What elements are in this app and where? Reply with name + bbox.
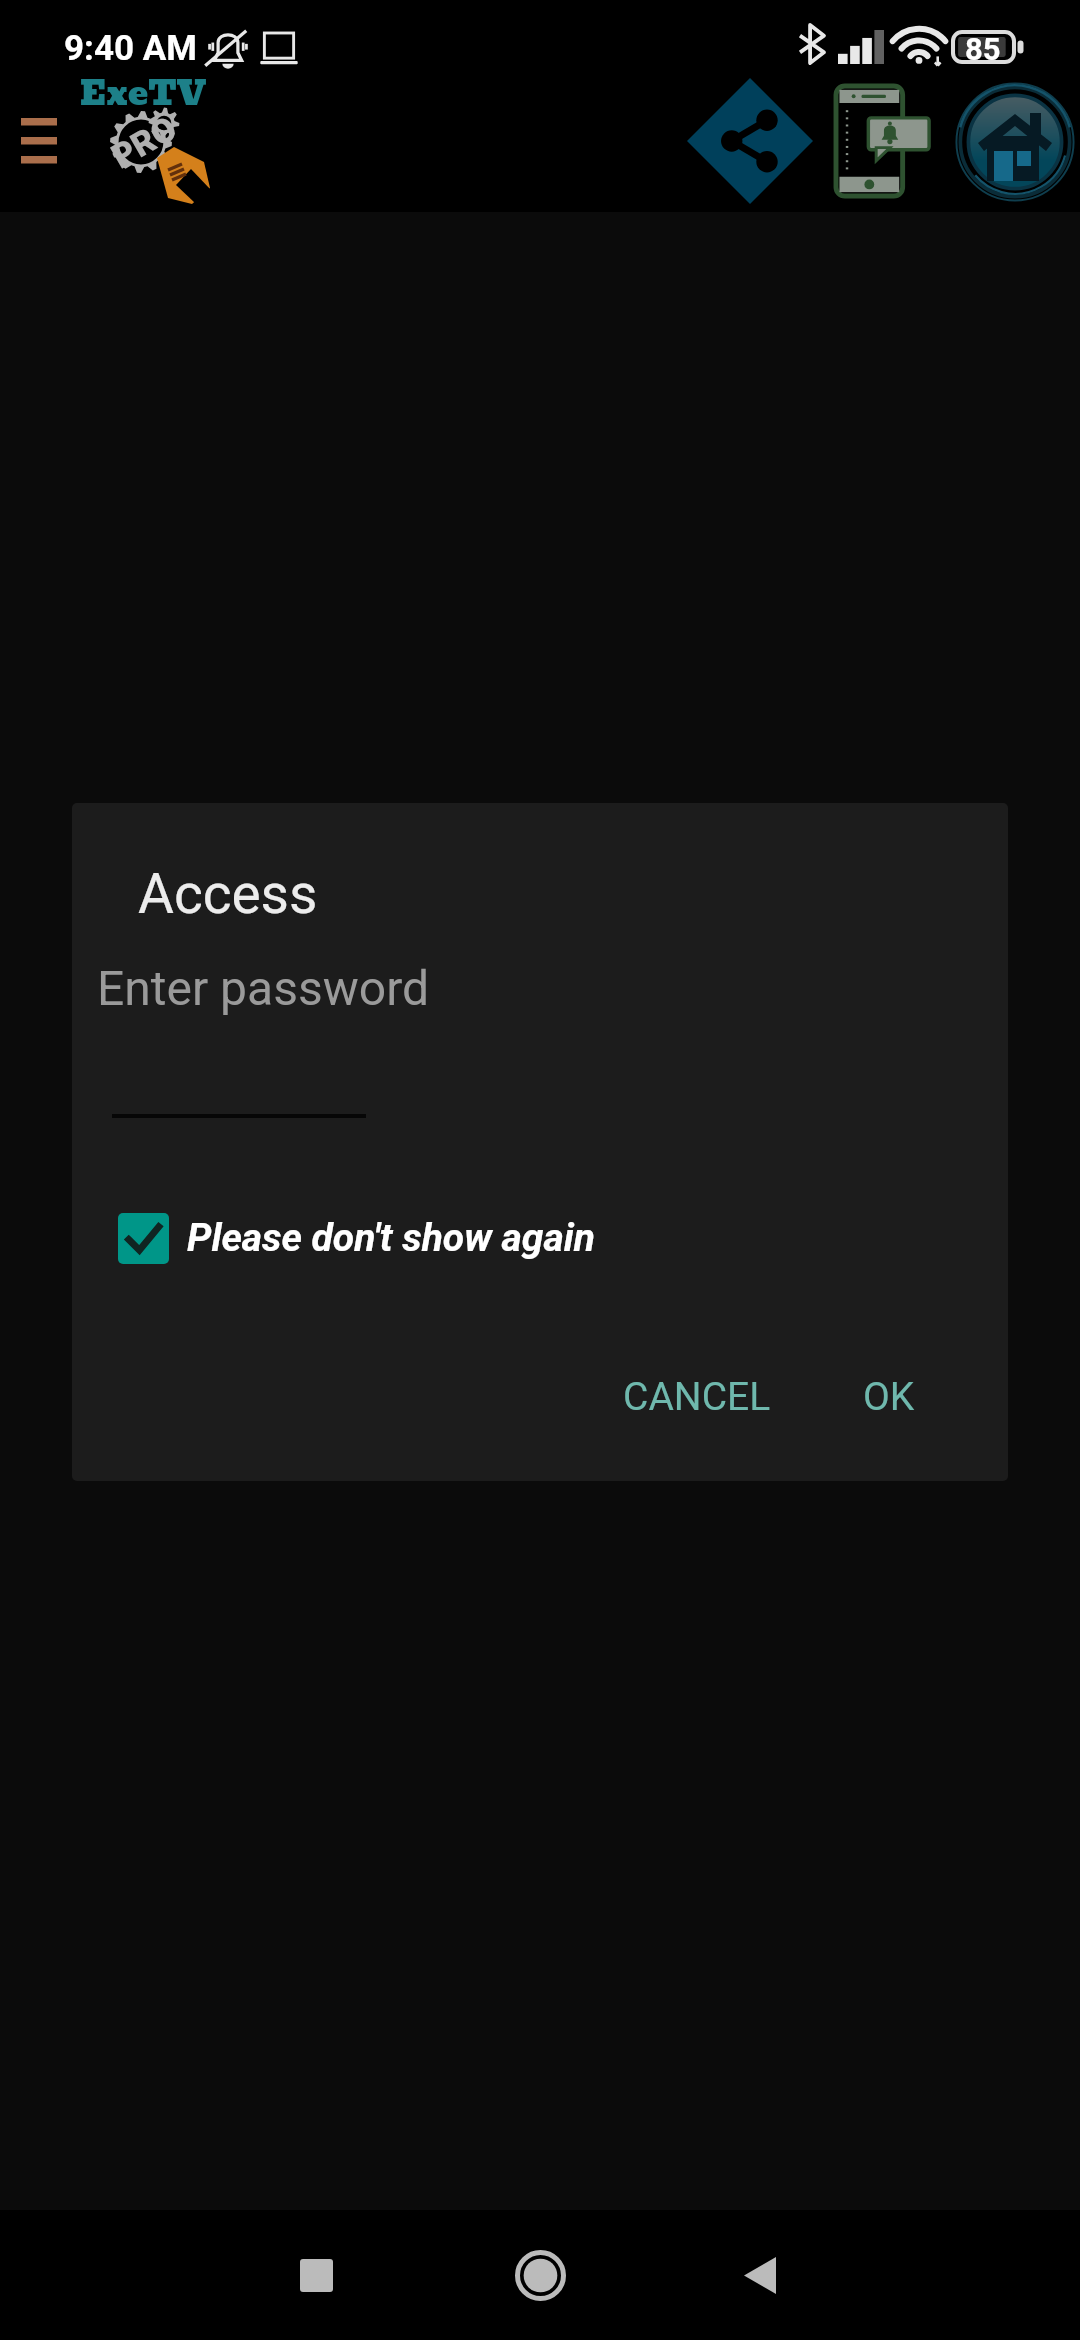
button[interactable]: Notifications [826,66,944,216]
button[interactable]: Home [945,72,1080,212]
staticText: 85 [965,31,1001,67]
button[interactable]: Enter password [97,943,547,1123]
staticText: OK [863,1374,915,1420]
button[interactable]: Recent apps [256,2215,376,2335]
button[interactable]: Please don't show again [118,1205,595,1271]
staticText: PRO [105,108,183,176]
button[interactable]: Open navigation menu [0,95,78,187]
button[interactable]: Home [480,2215,600,2335]
staticText: CANCEL [623,1374,771,1420]
button[interactable]: Back [700,2215,820,2335]
button[interactable]: Share [672,63,828,219]
staticText: ExeTV [80,66,207,121]
button[interactable]: CANCEL [599,1355,795,1439]
staticText: Please don't show again [187,1215,595,1261]
button[interactable]: OK [839,1355,939,1439]
staticText: Access [138,862,318,926]
button[interactable]: ExeTV PRO [58,70,228,212]
staticText: 9:40 AM [64,28,197,69]
staticText: Enter password [97,960,430,1016]
